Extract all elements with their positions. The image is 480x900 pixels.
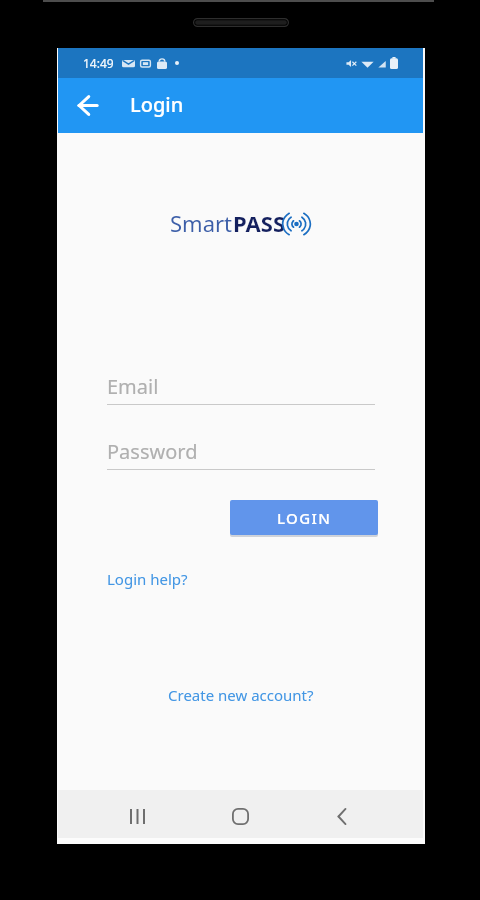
staticText: Smart [170,208,233,238]
staticText: Login help? [107,569,188,589]
staticText: Email [107,373,159,400]
button[interactable]: Create new account? [168,685,314,705]
button[interactable]: Email [107,366,375,405]
button[interactable]: Back [318,792,366,840]
button[interactable]: Home [216,792,264,840]
staticText: PASS [233,208,286,238]
staticText: Password [107,438,198,465]
button[interactable]: Recents [114,792,162,840]
staticText: Login [130,91,184,118]
button[interactable]: Password [107,431,375,470]
staticText: 14:49 [83,55,114,71]
button[interactable]: LOGIN [230,500,378,535]
button[interactable]: Login help? [107,569,188,589]
button[interactable]: Back [67,85,107,125]
staticText: LOGIN [277,508,332,528]
staticText: Create new account? [168,685,314,705]
